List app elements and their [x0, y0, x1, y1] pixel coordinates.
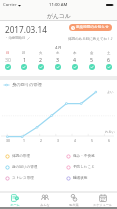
staticText: 5	[90, 56, 93, 63]
button[interactable]: 火	[32, 51, 49, 70]
staticText: 2	[39, 56, 42, 63]
staticText: みんな	[40, 203, 50, 207]
staticText: 4月	[55, 45, 62, 51]
staticText: 体調の管理	[12, 154, 31, 159]
button[interactable]: 身の回りの管理	[5, 162, 66, 173]
staticText: 5	[91, 138, 93, 143]
staticText: 木	[73, 51, 77, 55]
button[interactable]: 処方薬	[59, 193, 88, 207]
staticText: 水	[56, 51, 60, 55]
button[interactable]: ストレス管理	[5, 173, 66, 184]
staticText: 睡眠状態	[73, 176, 88, 181]
staticText: 4	[73, 56, 76, 63]
staticText: Carrier	[3, 2, 17, 8]
staticText: 月	[22, 51, 26, 55]
button[interactable]: 服薬時間のお知らせ	[69, 24, 112, 31]
button[interactable]: 予防したこと	[66, 162, 117, 173]
staticText: ストレス管理	[12, 176, 34, 181]
staticText: 身の回りの管理	[12, 82, 42, 87]
button[interactable]: ホーム	[0, 193, 30, 207]
staticText: 身の回りの管理	[12, 165, 38, 170]
staticText: 痛み・不快感	[73, 154, 95, 159]
staticText: 6	[108, 138, 110, 143]
staticText: 2017.03.14	[5, 24, 47, 35]
staticText: 処方薬	[69, 203, 79, 207]
button[interactable]: 木	[66, 51, 83, 70]
staticText: がんコル	[47, 12, 71, 19]
staticText: 1	[23, 138, 25, 143]
staticText: 土	[107, 51, 111, 55]
staticText: ホーム	[10, 203, 20, 207]
staticText: 火	[39, 51, 43, 55]
button[interactable]: 睡眠状態	[66, 173, 117, 184]
staticText: ・治療開始日	[5, 36, 26, 40]
staticText: 3	[57, 138, 59, 143]
staticText: わるい	[105, 130, 115, 134]
button[interactable]: みんな	[30, 193, 59, 207]
button[interactable]: 痛み・不快感	[66, 151, 117, 162]
button[interactable]: 土	[100, 51, 117, 70]
staticText: 3	[56, 56, 59, 63]
staticText: 2	[40, 138, 42, 143]
staticText: 4	[74, 138, 76, 143]
staticText: よい	[107, 90, 114, 94]
button[interactable]: 日	[0, 51, 16, 70]
staticText: 日	[6, 51, 10, 55]
staticText: 11:00 AM	[49, 2, 68, 8]
staticText: 30	[6, 138, 10, 143]
button[interactable]: 金	[83, 51, 100, 70]
button[interactable]: 体調の管理	[5, 151, 66, 162]
staticText: 服薬時間のお知らせ	[76, 25, 109, 30]
staticText: 1	[23, 56, 26, 63]
staticText: 6	[107, 56, 110, 63]
button[interactable]: 水	[49, 51, 66, 70]
button[interactable]: スケジュール	[88, 193, 117, 207]
staticText: 体調のある時に教えてね！♪	[68, 37, 113, 41]
staticText: 予防したこと	[73, 165, 95, 170]
staticText: 金	[90, 51, 94, 55]
button[interactable]: 月	[16, 51, 32, 70]
staticText: スケジュール	[93, 203, 112, 207]
staticText: 30	[5, 56, 11, 63]
